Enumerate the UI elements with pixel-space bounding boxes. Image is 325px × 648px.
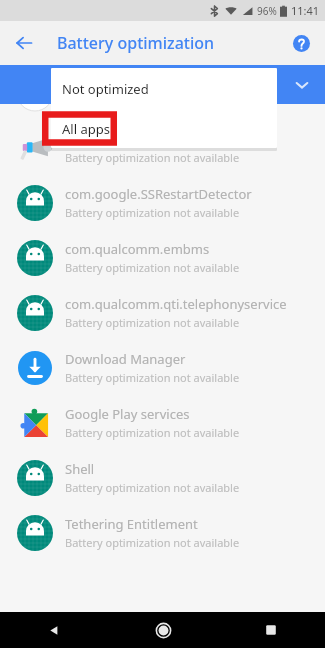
staticText: com.google.SSRestartDetector xyxy=(65,185,252,203)
button[interactable]: Shell xyxy=(0,450,325,505)
button[interactable]: com.qualcomm.embms xyxy=(0,230,325,285)
staticText: Battery optimization not available xyxy=(65,425,240,440)
button[interactable]: Back xyxy=(0,612,109,648)
button[interactable]: Help xyxy=(286,28,316,58)
staticText: Battery optimization not available xyxy=(65,535,240,550)
button[interactable]: Cell Broadcasts xyxy=(0,120,325,175)
button[interactable]: Tethering Entitlement xyxy=(0,505,325,560)
staticText: Battery optimization not available xyxy=(65,480,240,495)
button[interactable] xyxy=(0,65,325,120)
staticText: Google Play services xyxy=(65,405,190,423)
staticText: com.qualcomm.qti.telephonyservice xyxy=(65,295,287,313)
staticText: 96% xyxy=(257,4,277,18)
button[interactable]: Back xyxy=(8,27,40,59)
button[interactable]: com.qualcomm.qti.telephonyservice xyxy=(0,285,325,340)
staticText: Battery optimization not available xyxy=(65,260,240,275)
staticText: Battery optimization not available xyxy=(65,315,240,330)
button[interactable]: Google Play services xyxy=(0,395,325,450)
staticText: 11:41 xyxy=(291,3,320,18)
staticText: Tethering Entitlement xyxy=(65,515,198,533)
button[interactable]: Download Manager xyxy=(0,340,325,395)
staticText: Battery optimization not available xyxy=(65,370,240,385)
staticText: Battery optimization not available xyxy=(65,150,240,165)
button[interactable]: Recents xyxy=(217,612,325,648)
staticText: Battery optimization xyxy=(57,32,215,54)
button[interactable]: Home xyxy=(109,612,217,648)
staticText: Download Manager xyxy=(65,350,186,368)
staticText: Not optimized xyxy=(62,80,149,98)
staticText: com.qualcomm.embms xyxy=(65,240,210,258)
staticText: Cell Broadcasts xyxy=(65,130,159,148)
button[interactable]: All apps xyxy=(51,109,277,148)
staticText: Shell xyxy=(65,460,95,478)
staticText: Battery optimization not available xyxy=(65,205,240,220)
button[interactable]: Not optimized xyxy=(51,68,277,109)
button[interactable]: com.google.SSRestartDetector xyxy=(0,175,325,230)
staticText: All apps xyxy=(62,120,110,138)
button[interactable]: Expand filter xyxy=(287,70,317,100)
